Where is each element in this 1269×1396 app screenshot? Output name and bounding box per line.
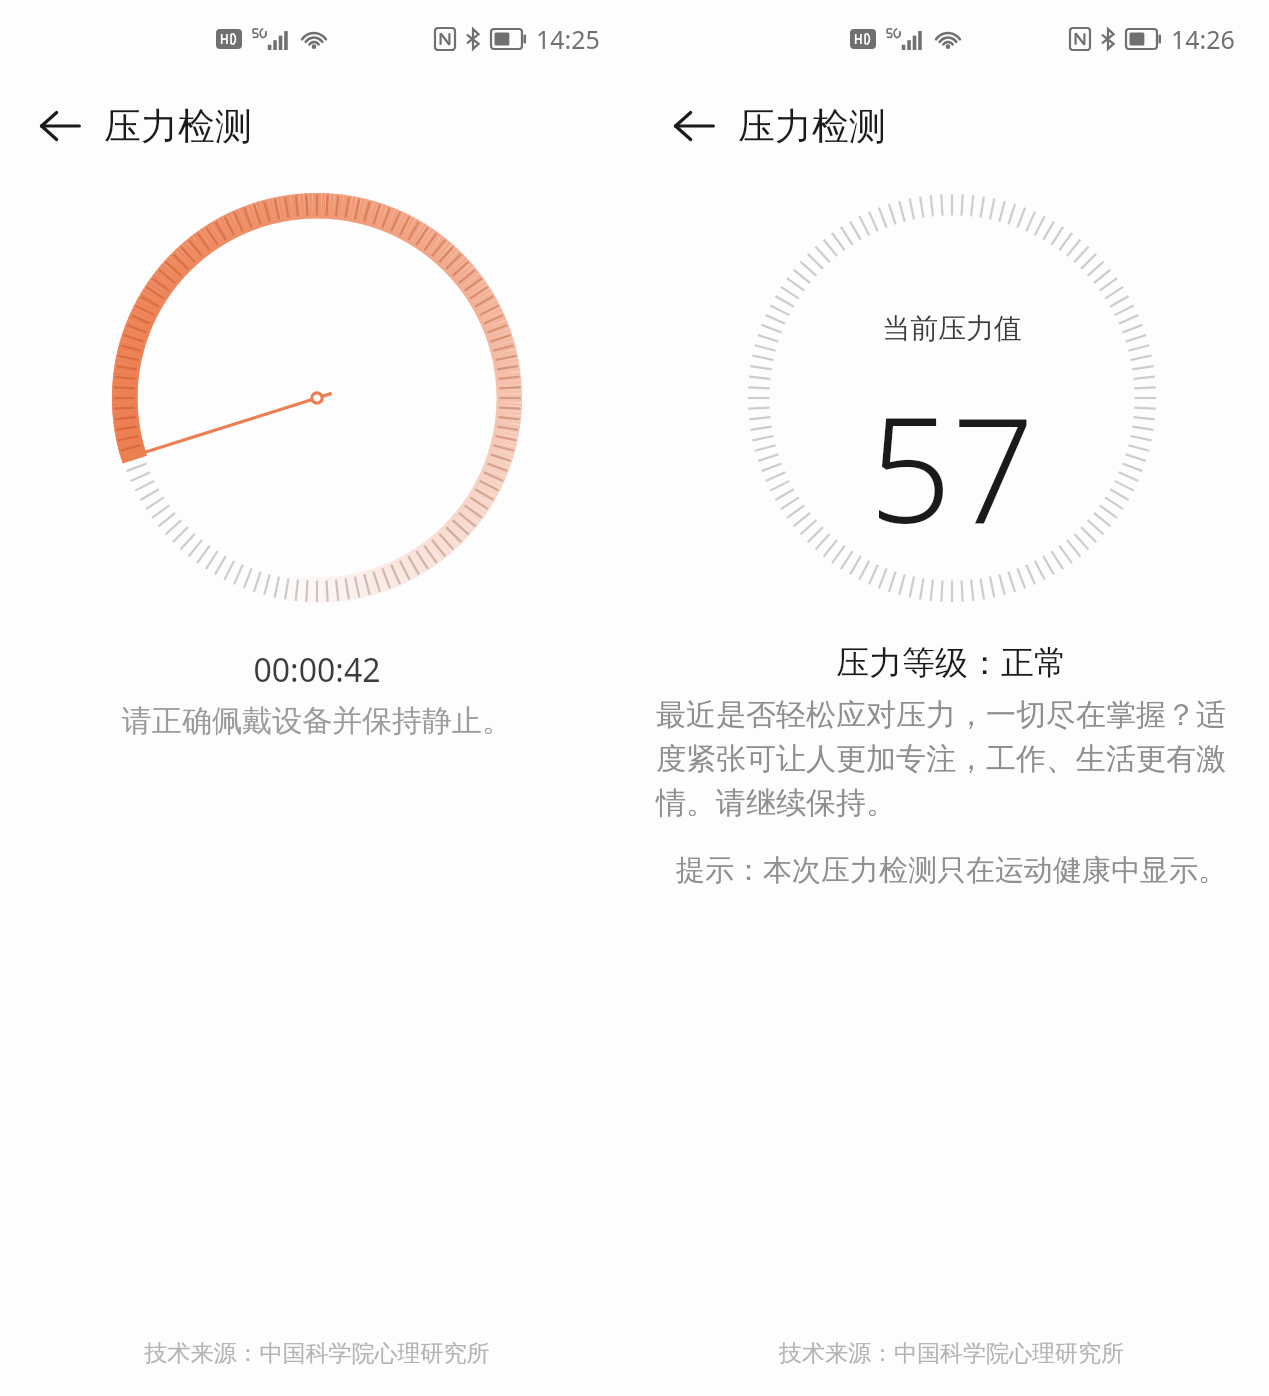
staticText: 当前压力值 <box>882 311 1022 346</box>
staticText: 00:00:42 <box>0 648 634 692</box>
button[interactable]: Back <box>658 90 730 162</box>
staticText: 技术来源：中国科学院心理研究所 <box>634 1339 1269 1368</box>
button[interactable]: Back <box>24 90 96 162</box>
staticText: 请正确佩戴设备并保持静止。 <box>0 702 634 740</box>
staticText: 压力等级：正常 <box>634 642 1269 684</box>
staticText: 57 <box>869 368 1035 565</box>
staticText: 最近是否轻松应对压力，一切尽在掌握？适度紧张可让人更加专注，工作、生活更有激情。… <box>656 696 1247 822</box>
staticText: 提示：本次压力检测只在运动健康中显示。 <box>634 852 1269 889</box>
staticText: 14:25 <box>536 22 600 56</box>
staticText: 压力检测 <box>738 103 886 150</box>
staticText: 14:26 <box>1171 22 1235 56</box>
staticText: 技术来源：中国科学院心理研究所 <box>0 1339 634 1368</box>
staticText: 压力检测 <box>104 103 252 150</box>
